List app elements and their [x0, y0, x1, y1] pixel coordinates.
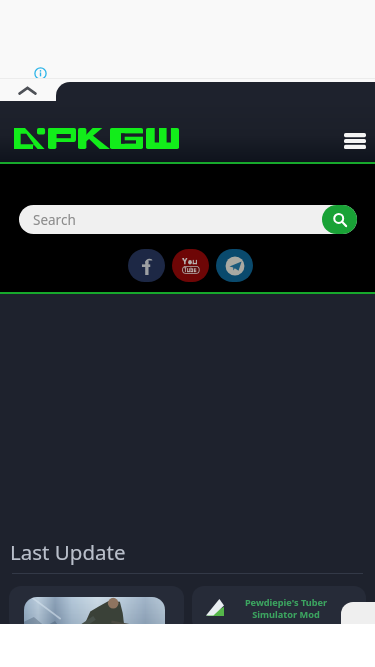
staticText: Last Update — [10, 538, 126, 566]
button[interactable]: Ad information — [34, 67, 47, 80]
button[interactable]: YouTube — [172, 249, 209, 282]
button[interactable]: Facebook — [128, 249, 165, 282]
button[interactable]: Telegram — [216, 249, 253, 282]
button[interactable]: Search — [19, 205, 357, 234]
button[interactable]: Search — [322, 205, 357, 234]
button[interactable]: Pewdiepie's Tuber Simulator Mod — [192, 586, 366, 632]
button[interactable] — [14, 128, 181, 150]
button[interactable] — [9, 586, 184, 632]
button[interactable]: Menu — [334, 127, 375, 155]
staticText: Pewdiepie's Tuber Simulator Mod — [229, 596, 343, 620]
button[interactable]: Collapse ad — [0, 79, 54, 101]
staticText: Search — [33, 211, 76, 229]
